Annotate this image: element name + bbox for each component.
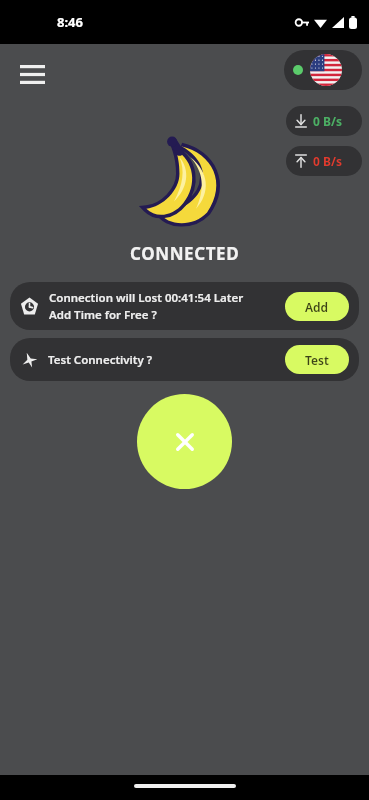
button[interactable]: Menu	[10, 52, 54, 96]
button[interactable]: Add	[285, 292, 349, 321]
staticText: 0 B/s	[313, 113, 342, 129]
staticText: Add	[305, 299, 329, 315]
button[interactable]: Download speed	[286, 106, 362, 136]
button[interactable]: Test	[285, 345, 349, 374]
button[interactable]: Upload speed	[286, 146, 362, 176]
staticText: CONNECTED	[130, 242, 240, 265]
staticText: 8:46	[57, 13, 83, 31]
staticText: Test	[305, 352, 329, 368]
button[interactable]: Select server location	[284, 50, 362, 90]
button[interactable]: Connection will Lost 00:41:54 Later Add …	[10, 282, 359, 330]
button[interactable]: Test Connectivity ?	[10, 338, 359, 381]
staticText: 0 B/s	[313, 153, 342, 169]
staticText: Test Connectivity ?	[48, 352, 279, 368]
staticText: Connection will Lost 00:41:54 Later Add …	[49, 290, 279, 322]
button[interactable]: Disconnect	[137, 394, 232, 489]
